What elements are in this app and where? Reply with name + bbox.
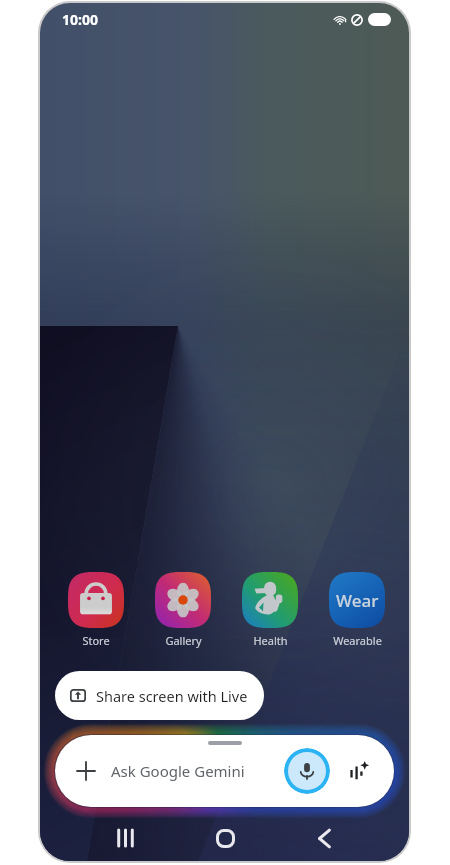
staticText: Wear (336, 589, 379, 612)
staticText: Wearable (333, 633, 382, 648)
button[interactable]: Share screen with Live (55, 671, 264, 720)
staticText: Ask Google Gemini (111, 761, 245, 781)
button[interactable]: Voice search (284, 748, 330, 794)
button[interactable]: Gallery (147, 572, 219, 648)
staticText: Gallery (165, 633, 202, 648)
button[interactable]: Home (202, 815, 248, 861)
staticText: Store (82, 633, 110, 648)
staticText: 10:00 (62, 10, 98, 29)
staticText: Share screen with Live (96, 686, 248, 706)
staticText: Health (253, 633, 288, 648)
button[interactable]: Store (60, 572, 132, 648)
button[interactable]: Health (234, 572, 306, 648)
button[interactable]: Recent apps (102, 815, 148, 861)
button[interactable]: Ask Google Gemini (55, 735, 394, 807)
button[interactable]: Back (301, 815, 347, 861)
button[interactable]: Gemini Live (344, 756, 374, 786)
button[interactable]: Wear (321, 572, 393, 648)
